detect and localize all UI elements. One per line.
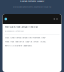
- button[interactable]: www.designsystems.example/issue-42: [13, 5, 51, 8]
- staticText: Type scales that actually hold up: [4, 25, 37, 28]
- staticText: Most type ramps break the moment they: [4, 36, 45, 39]
- staticText: meet real editorial copy at small sizes.: [4, 40, 46, 43]
- staticText: Design Systems Weekly: [20, 0, 44, 2]
- button[interactable]: Design Systems Weekly: [20, 0, 44, 2]
- staticText: Here is a sturdier approach.: [4, 44, 32, 47]
- staticText: www.designsystems.example/issue-42: [13, 5, 51, 8]
- staticText: By Ada Reyes · 6 min read: [4, 30, 23, 32]
